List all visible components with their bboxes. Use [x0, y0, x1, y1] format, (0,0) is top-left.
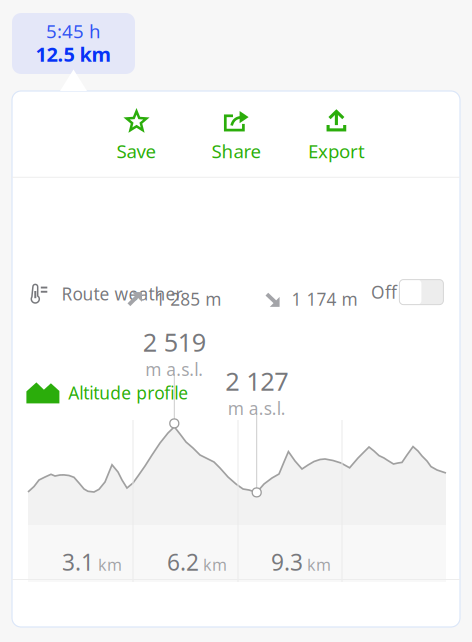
staticText: m a.s.l. — [145, 358, 203, 381]
button[interactable]: Share — [186, 91, 286, 177]
staticText: Save — [116, 139, 156, 163]
staticText: 1 174 m — [292, 288, 358, 311]
staticText: 9.3 — [271, 547, 303, 577]
staticText: m a.s.l. — [228, 397, 286, 420]
staticText: 2 127 — [225, 364, 288, 398]
staticText: Share — [211, 139, 261, 163]
staticText: 6.2 — [167, 547, 199, 577]
button[interactable]: Save — [86, 91, 186, 177]
staticText: Export — [308, 139, 365, 163]
staticText: Route weather — [61, 282, 182, 305]
staticText: 5:45 h — [46, 19, 101, 43]
staticText: 2 519 — [143, 325, 206, 359]
button[interactable]: Altitude profile — [12, 91, 460, 627]
staticText: Altitude profile — [68, 381, 188, 404]
staticText: km — [203, 554, 227, 575]
staticText: 3.1 — [62, 547, 94, 577]
button[interactable]: Route weather — [12, 91, 460, 627]
staticText: km — [98, 554, 122, 575]
staticText: km — [307, 554, 331, 575]
staticText: 1 285 m — [155, 288, 221, 311]
staticText: 12.5 km — [35, 41, 111, 67]
button[interactable]: Itinerary — [12, 91, 460, 627]
staticText: Off — [371, 281, 397, 304]
button[interactable]: Export — [286, 91, 386, 177]
